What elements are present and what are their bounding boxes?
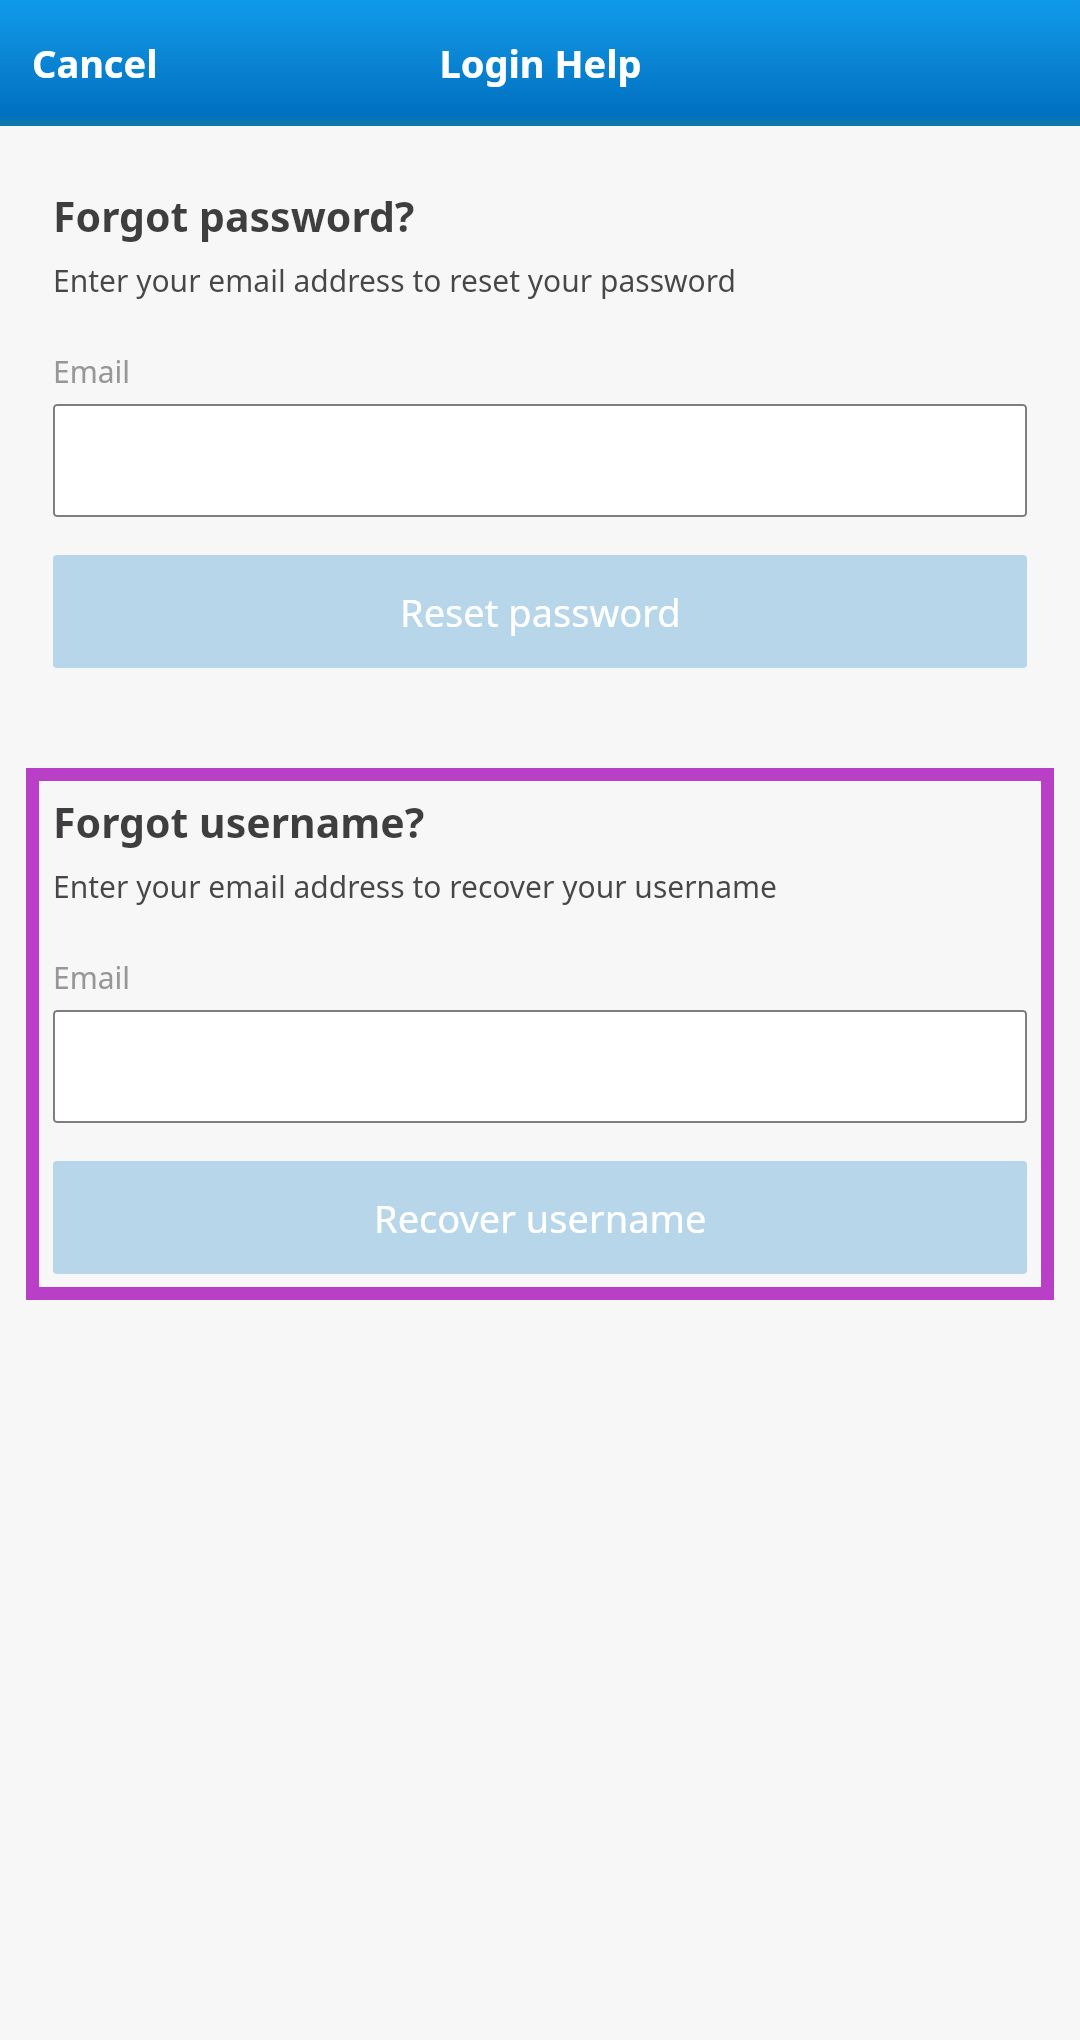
button[interactable]: Reset password [53,555,1027,668]
button[interactable]: Email address for password reset [53,404,1027,517]
staticText: Recover username [374,1192,707,1244]
staticText: Cancel [32,37,158,89]
staticText: Enter your email address to recover your… [53,866,777,907]
staticText: Email [53,351,131,392]
button[interactable]: Recover username [53,1161,1027,1274]
staticText: Forgot username? [53,794,425,850]
staticText: Forgot password? [53,188,415,244]
staticText: Email [53,957,131,998]
button[interactable]: Email address for username recovery [53,1010,1027,1123]
staticText: Reset password [400,586,681,638]
staticText: Enter your email address to reset your p… [53,260,736,301]
button[interactable]: Cancel [16,27,174,99]
staticText: Login Help [439,37,642,89]
